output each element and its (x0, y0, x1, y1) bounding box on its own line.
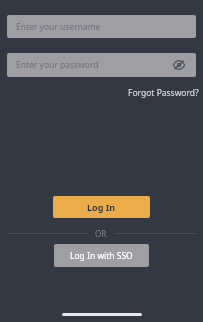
staticText: Enter your password (16, 59, 99, 71)
staticText: Log In with SSO (70, 250, 133, 262)
staticText: Forgot Password? (128, 87, 199, 99)
staticText: Log In (87, 201, 116, 213)
button[interactable]: Enter your password (7, 53, 196, 77)
button[interactable]: Forgot Password? (126, 85, 201, 101)
button[interactable]: Log In (53, 196, 150, 218)
button[interactable]: Log In with SSO (54, 244, 149, 267)
staticText: OR (95, 228, 107, 238)
button[interactable]: Enter your username (7, 15, 196, 38)
staticText: Enter your username (16, 21, 101, 33)
button[interactable]: Show password (172, 58, 186, 72)
